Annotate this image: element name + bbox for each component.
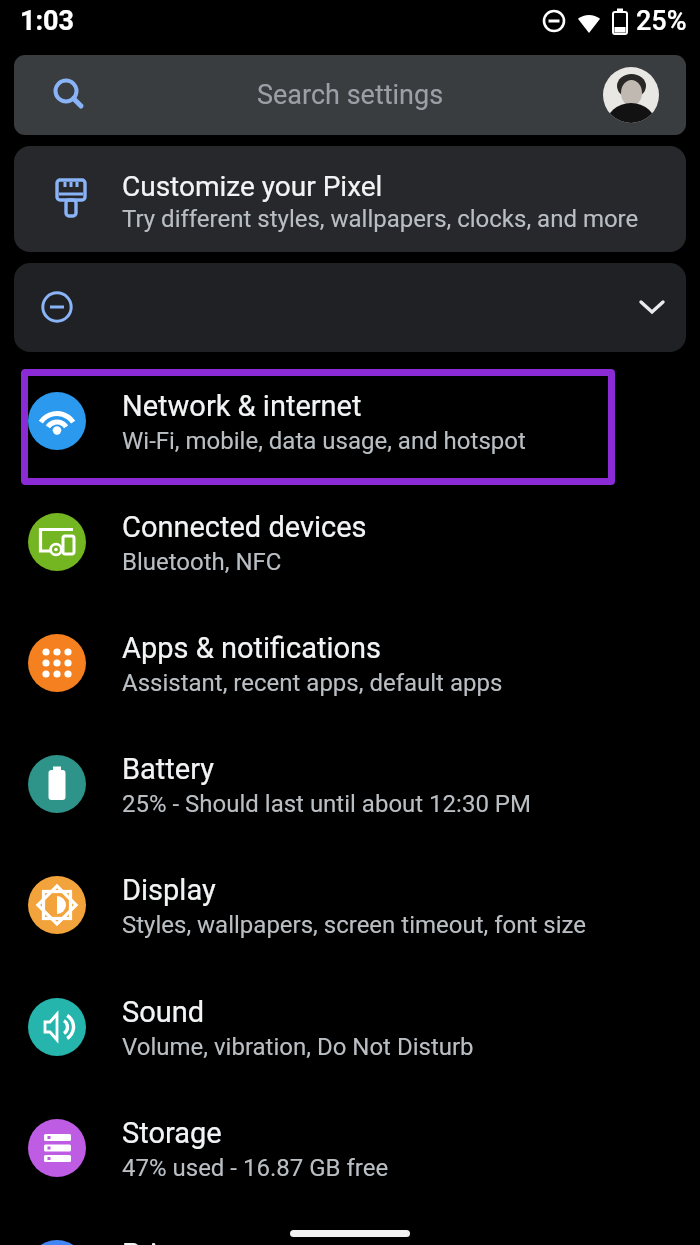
staticText: 1:03 (20, 5, 75, 37)
staticText: Network & internet (122, 389, 362, 423)
button[interactable]: Customize your Pixel (14, 146, 686, 252)
button[interactable]: Sound (0, 967, 700, 1088)
staticText: Wi-Fi, mobile, data usage, and hotspot (122, 427, 526, 455)
staticText: Apps & notifications (122, 631, 382, 665)
staticText: Connected devices (122, 510, 367, 544)
staticText: Volume, vibration, Do Not Disturb (122, 1033, 474, 1061)
staticText: Try different styles, wallpapers, clocks… (122, 205, 639, 233)
button[interactable]: Apps & notifications (0, 603, 700, 724)
button[interactable]: Search settings (14, 55, 686, 135)
button[interactable]: Network & internet (0, 361, 700, 482)
staticText: Assistant, recent apps, default apps (122, 669, 503, 697)
button[interactable]: Privacy (0, 1209, 700, 1245)
staticText: Styles, wallpapers, screen timeout, font… (122, 911, 586, 939)
staticText: Battery (122, 752, 214, 786)
button[interactable] (14, 263, 686, 352)
staticText: 25% (636, 5, 687, 37)
staticText: Customize your Pixel (122, 170, 383, 203)
button[interactable]: Storage (0, 1088, 700, 1209)
staticText: Privacy (122, 1237, 216, 1245)
staticText: Display (122, 873, 216, 907)
button[interactable]: Connected devices (0, 482, 700, 603)
staticText: Storage (122, 1116, 222, 1150)
button[interactable]: Battery (0, 724, 700, 845)
staticText: Sound (122, 995, 205, 1029)
staticText: Bluetooth, NFC (122, 548, 282, 576)
staticText: 47% used - 16.87 GB free (122, 1154, 389, 1182)
button[interactable]: Display (0, 845, 700, 966)
staticText: Search settings (257, 79, 444, 111)
staticText: 25% - Should last until about 12:30 PM (122, 790, 531, 818)
